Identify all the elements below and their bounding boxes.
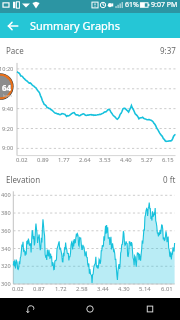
staticText: 0.02 bbox=[12, 285, 24, 293]
button[interactable]: Back bbox=[0, 298, 60, 320]
staticText: 400 bbox=[1, 191, 11, 199]
button[interactable]: Back bbox=[0, 13, 26, 38]
staticText: 1.72 bbox=[55, 285, 67, 293]
staticText: 0.89 bbox=[37, 156, 49, 164]
staticText: 9:20 bbox=[2, 125, 14, 133]
staticText: 0 ft bbox=[163, 174, 176, 185]
staticText: 1.77 bbox=[58, 156, 70, 164]
staticText: 10:20 bbox=[0, 65, 14, 73]
staticText: 9:37 bbox=[160, 45, 176, 56]
staticText: Summary Graphs bbox=[30, 18, 120, 33]
staticText: Pace bbox=[6, 45, 24, 56]
staticText: 9:00 bbox=[2, 144, 14, 152]
staticText: bpm bbox=[3, 93, 12, 98]
staticText: 4.40 bbox=[120, 156, 132, 164]
button[interactable]: Heart rate 64 bbox=[0, 73, 15, 100]
staticText: 3.53 bbox=[99, 156, 111, 164]
staticText: 10:00 bbox=[0, 85, 14, 93]
staticText: 9:40 bbox=[2, 105, 14, 113]
staticText: 3.44 bbox=[97, 285, 109, 293]
staticText: 2.58 bbox=[76, 285, 88, 293]
staticText: 380 bbox=[1, 209, 11, 217]
staticText: 320 bbox=[1, 262, 11, 270]
button[interactable]: Recent apps bbox=[120, 298, 180, 320]
staticText: 2.64 bbox=[79, 156, 91, 164]
staticText: 360 bbox=[1, 227, 11, 235]
staticText: Elevation bbox=[6, 174, 41, 185]
staticText: 5.14 bbox=[139, 285, 151, 293]
staticText: 6.01 bbox=[161, 285, 173, 293]
staticText: 0.87 bbox=[33, 285, 45, 293]
staticText: 61% bbox=[125, 0, 139, 10]
staticText: 6.15 bbox=[162, 156, 174, 164]
staticText: 300 bbox=[1, 280, 11, 288]
staticText: 9:07 PM bbox=[151, 0, 178, 10]
staticText: 64 bbox=[2, 82, 12, 93]
staticText: 5.27 bbox=[141, 156, 153, 164]
staticText: 4.30 bbox=[118, 285, 130, 293]
button[interactable]: Home bbox=[60, 298, 120, 320]
staticText: 340 bbox=[1, 245, 11, 253]
staticText: 0.02 bbox=[16, 156, 28, 164]
